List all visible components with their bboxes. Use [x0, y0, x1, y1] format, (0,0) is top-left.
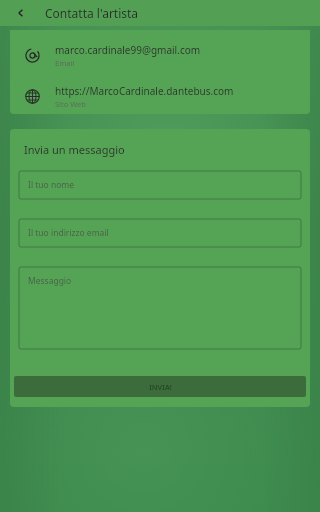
staticText: Il tuo nome: [28, 179, 75, 191]
staticText: Invia un messaggio: [24, 142, 125, 157]
button[interactable]: Email: [10, 40, 310, 70]
other: Website: [25, 89, 40, 104]
button[interactable]: Il tuo nome: [19, 171, 301, 199]
staticText: Il tuo indirizzo email: [28, 227, 109, 239]
staticText: INVIA!: [149, 382, 172, 392]
button[interactable]: Website: [10, 81, 310, 111]
staticText: Email: [55, 58, 75, 68]
staticText: marco.cardinale99@gmail.com: [55, 43, 201, 57]
other: Email: [25, 48, 40, 63]
button[interactable]: Il tuo indirizzo email: [19, 219, 301, 247]
staticText: Contatta l'artista: [45, 5, 139, 21]
staticText: Sito Web: [55, 99, 86, 109]
button[interactable]: Messaggio: [19, 267, 301, 349]
staticText: https://MarcoCardinale.dantebus.com: [55, 84, 234, 98]
staticText: Messaggio: [28, 275, 72, 287]
button[interactable]: Back: [10, 2, 32, 24]
